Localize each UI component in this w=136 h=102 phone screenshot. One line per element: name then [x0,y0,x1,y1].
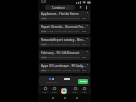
staticText: RewardsReport catalog - Nirvana Diamond [41,38,86,42]
staticText: Repair Utensils - Discount Frontline [41,25,86,29]
staticText: Save [82,69,87,72]
button[interactable]: Save [80,17,89,20]
staticText: 9:41 [41,0,47,4]
staticText: February - 5% GiftDiscount [41,51,80,55]
button[interactable]: Recents [71,95,83,101]
button[interactable]: Repair Utensils - Discount Frontline [39,24,90,34]
staticText: More [82,91,87,94]
staticText: Explore the newest gadget catalogue [41,68,83,71]
button[interactable]: Install [78,79,88,84]
staticText: Save [82,17,87,20]
button[interactable]: Browser [61,88,67,94]
staticText: Save [82,43,87,46]
button[interactable]: More [82,87,87,94]
button[interactable]: Account [78,5,83,10]
button[interactable]: Save [80,56,89,59]
button[interactable]: Open [41,56,47,59]
staticText: New entries added every single week [41,42,83,45]
button[interactable]: Open [41,69,47,72]
staticText: Save [82,56,87,59]
button[interactable]: Open [41,17,47,20]
button[interactable]: February - 5% GiftDiscount [39,50,90,60]
button[interactable]: More options [84,5,89,10]
staticText: Install [80,80,87,83]
staticText: Open [41,69,47,72]
staticText: Saved [72,91,78,94]
button[interactable]: Open [41,30,47,33]
staticText: Combine [52,6,65,10]
staticText: Home [42,91,48,94]
button[interactable]: Appliances - Florida Stores [39,11,90,21]
button[interactable]: Open [41,43,47,46]
button[interactable]: Combine [45,5,75,10]
staticText: Grab the offer before it expires soon [41,55,82,58]
button[interactable]: Apps US Landscape - 99 Gadget [39,63,90,73]
button[interactable]: Saved [72,87,78,94]
staticText: Open [41,56,47,59]
staticText: Save [82,30,87,33]
staticText: A cool site to find a best appliances [41,16,81,19]
button[interactable]: RewardsReport catalog - Nirvana Diamond [39,37,90,47]
staticText: Sponsored [46,81,58,84]
button[interactable]: Home [59,95,71,101]
button[interactable]: Save [80,30,89,33]
button[interactable]: Home [42,87,48,94]
button[interactable]: Deals [52,87,57,94]
button[interactable]: Sponsored [39,76,90,86]
staticText: Open [41,43,47,46]
staticText: Appliances - Florida Stores [41,12,79,16]
staticText: Open [41,17,47,20]
staticText: Open [41,30,47,33]
staticText: Local repair shops near you today [41,29,79,32]
button[interactable]: Save [80,69,89,72]
staticText: Apps US Landscape - 99 Gadget [41,64,86,68]
staticText: Deals [52,91,57,94]
button[interactable]: Save [80,43,89,46]
button[interactable]: Back [47,95,59,101]
